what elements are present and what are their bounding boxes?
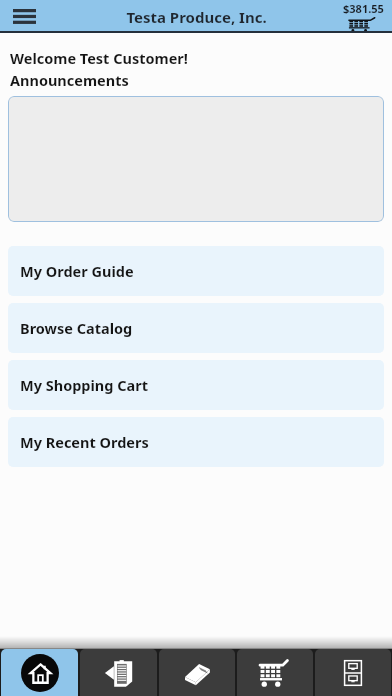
button[interactable]: Cart (237, 649, 313, 696)
button[interactable]: My Shopping Cart (8, 360, 384, 410)
button[interactable]: Menu (0, 0, 48, 33)
button[interactable]: Recent orders (315, 649, 391, 696)
staticText: Announcements (10, 70, 129, 90)
button[interactable]: Shopping cart (334, 0, 392, 33)
staticText: My Order Guide (20, 261, 134, 281)
button[interactable]: Order guide (80, 649, 157, 696)
button[interactable]: My Order Guide (8, 246, 384, 296)
button[interactable]: Browse Catalog (8, 303, 384, 353)
staticText: Welcome Test Customer! (10, 48, 188, 68)
staticText: My Recent Orders (20, 432, 149, 452)
button[interactable]: My Recent Orders (8, 417, 384, 467)
staticText: My Shopping Cart (20, 375, 148, 395)
staticText: Browse Catalog (20, 318, 133, 338)
staticText: $381.55 (343, 1, 384, 16)
staticText: Testa Produce, Inc. (126, 7, 267, 27)
button[interactable]: Catalog (159, 649, 235, 696)
button[interactable]: Home (1, 649, 78, 696)
